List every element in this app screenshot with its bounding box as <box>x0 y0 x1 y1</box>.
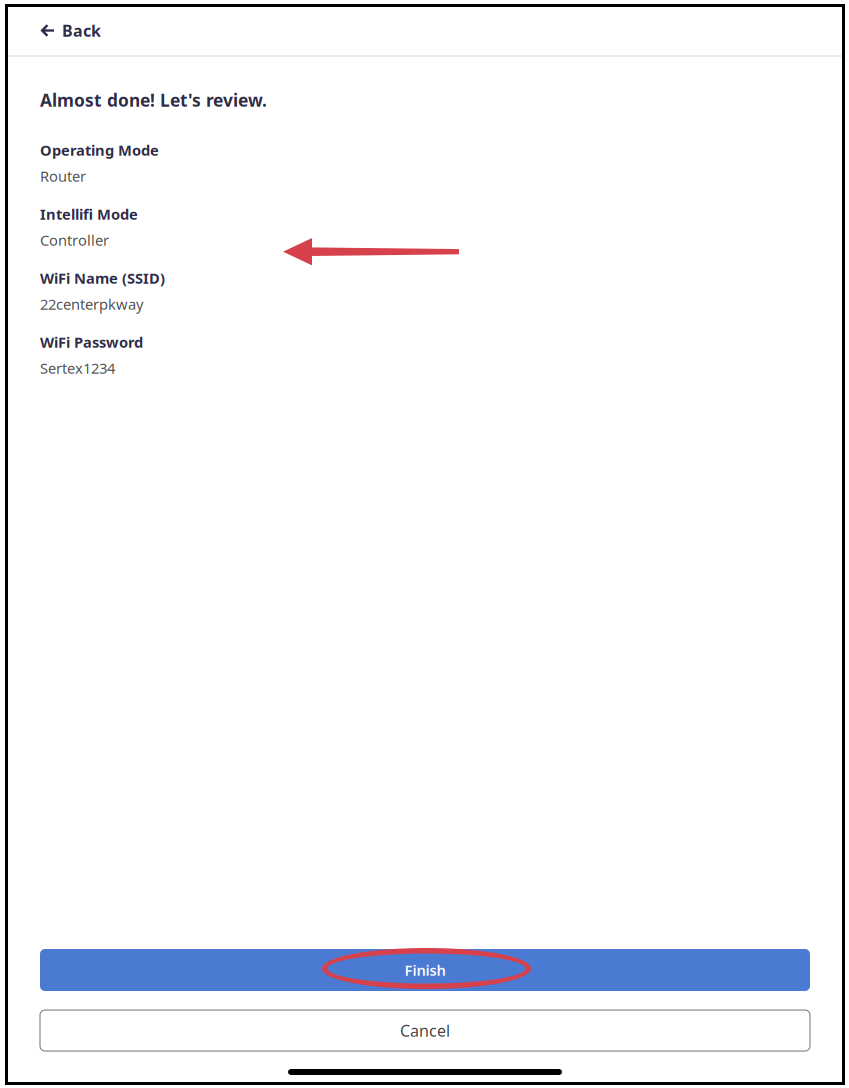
staticText: Finish <box>404 960 445 980</box>
button[interactable]: Cancel <box>40 1010 810 1051</box>
button[interactable]: Back <box>8 7 117 55</box>
staticText: Intellifi Mode <box>40 204 138 224</box>
staticText: Almost done! Let's review. <box>40 88 267 111</box>
staticText: Controller <box>40 230 109 250</box>
staticText: Cancel <box>400 1020 450 1041</box>
staticText: Sertex1234 <box>40 358 115 378</box>
staticText: WiFi Name (SSID) <box>40 268 165 288</box>
button[interactable]: Finish <box>40 949 810 991</box>
staticText: Operating Mode <box>40 140 159 160</box>
staticText: Router <box>40 166 86 186</box>
staticText: WiFi Password <box>40 332 143 352</box>
staticText: Back <box>62 20 101 41</box>
staticText: 22centerpkway <box>40 294 143 314</box>
